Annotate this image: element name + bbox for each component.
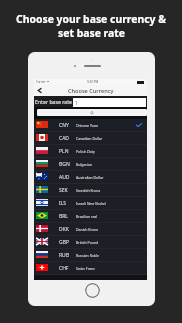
button[interactable]: Search xyxy=(37,109,147,116)
staticText: ILS xyxy=(59,200,67,207)
button[interactable]: CHF xyxy=(34,262,147,275)
button[interactable]: GBP xyxy=(34,236,147,249)
button[interactable]: SEK xyxy=(34,184,147,197)
button[interactable]: Home xyxy=(85,283,100,298)
staticText: set base rate xyxy=(58,26,125,40)
staticText: Australian Dollar xyxy=(76,175,104,180)
staticText: Danish Krone xyxy=(76,227,99,232)
staticText: PLN xyxy=(59,148,69,155)
staticText: CNY xyxy=(59,122,69,129)
staticText: BRL xyxy=(59,213,68,220)
staticText: Brazilian real xyxy=(76,214,98,219)
button[interactable]: RUB xyxy=(34,249,147,262)
staticText: Chinese Yuan xyxy=(76,123,99,128)
staticText: CHF xyxy=(59,265,69,272)
staticText: CAD xyxy=(59,135,70,142)
staticText: Bulgarian xyxy=(76,162,92,167)
staticText: Carrier xyxy=(36,80,46,84)
button[interactable]: ILS xyxy=(34,197,147,210)
staticText: Russian Ruble xyxy=(76,253,100,258)
staticText: SEK xyxy=(59,187,68,194)
staticText: Polish Zloty xyxy=(76,149,95,154)
button[interactable]: Back xyxy=(37,85,147,96)
button[interactable]: CNY xyxy=(34,119,147,132)
staticText: Choose Currency xyxy=(68,87,114,95)
staticText: Swedish Krona xyxy=(76,188,101,193)
staticText: 1 xyxy=(75,100,78,106)
staticText: Choose your base currency & xyxy=(16,12,166,26)
staticText: Israeli New Shekel xyxy=(76,201,106,206)
staticText: Swiss Franc xyxy=(76,266,95,271)
button[interactable]: 1 xyxy=(73,98,146,107)
button[interactable]: PLN xyxy=(34,145,147,158)
staticText: DKK xyxy=(59,226,69,233)
button[interactable]: DKK xyxy=(34,223,147,236)
staticText: Enter base rate : xyxy=(35,98,75,105)
staticText: Canadian Dollar xyxy=(76,136,103,141)
button[interactable]: BRL xyxy=(34,210,147,223)
staticText: AUD xyxy=(59,174,70,181)
staticText: RUB xyxy=(59,252,70,259)
staticText: BGN xyxy=(59,161,70,168)
button[interactable]: BGN xyxy=(34,158,147,171)
button[interactable]: AUD xyxy=(34,171,147,184)
staticText: British Pound xyxy=(76,240,99,245)
staticText: GBP xyxy=(59,239,69,246)
button[interactable]: CAD xyxy=(34,132,147,145)
staticText: 9:29 PM xyxy=(87,80,99,84)
